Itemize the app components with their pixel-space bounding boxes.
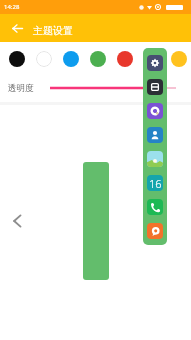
button[interactable] (9, 51, 25, 67)
button[interactable] (144, 51, 160, 67)
button[interactable]: Camera (147, 103, 163, 119)
button[interactable]: Phone (147, 199, 163, 215)
button[interactable]: Settings (147, 55, 163, 71)
button[interactable] (36, 51, 52, 67)
button[interactable] (63, 51, 79, 67)
button[interactable] (117, 51, 133, 67)
staticText: 16 (149, 176, 162, 191)
staticText: 主题设置 (33, 24, 73, 37)
staticText: 透明度 (8, 83, 34, 94)
button[interactable]: Files (147, 79, 163, 95)
button[interactable]: Calendar (147, 175, 163, 191)
button[interactable]: Contacts (147, 127, 163, 143)
button[interactable]: Back (7, 18, 27, 38)
button[interactable] (90, 51, 106, 67)
button[interactable]: Gallery (147, 151, 163, 167)
button[interactable] (171, 51, 187, 67)
staticText: 14:28 (4, 3, 20, 11)
button[interactable]: Messages (147, 223, 163, 239)
